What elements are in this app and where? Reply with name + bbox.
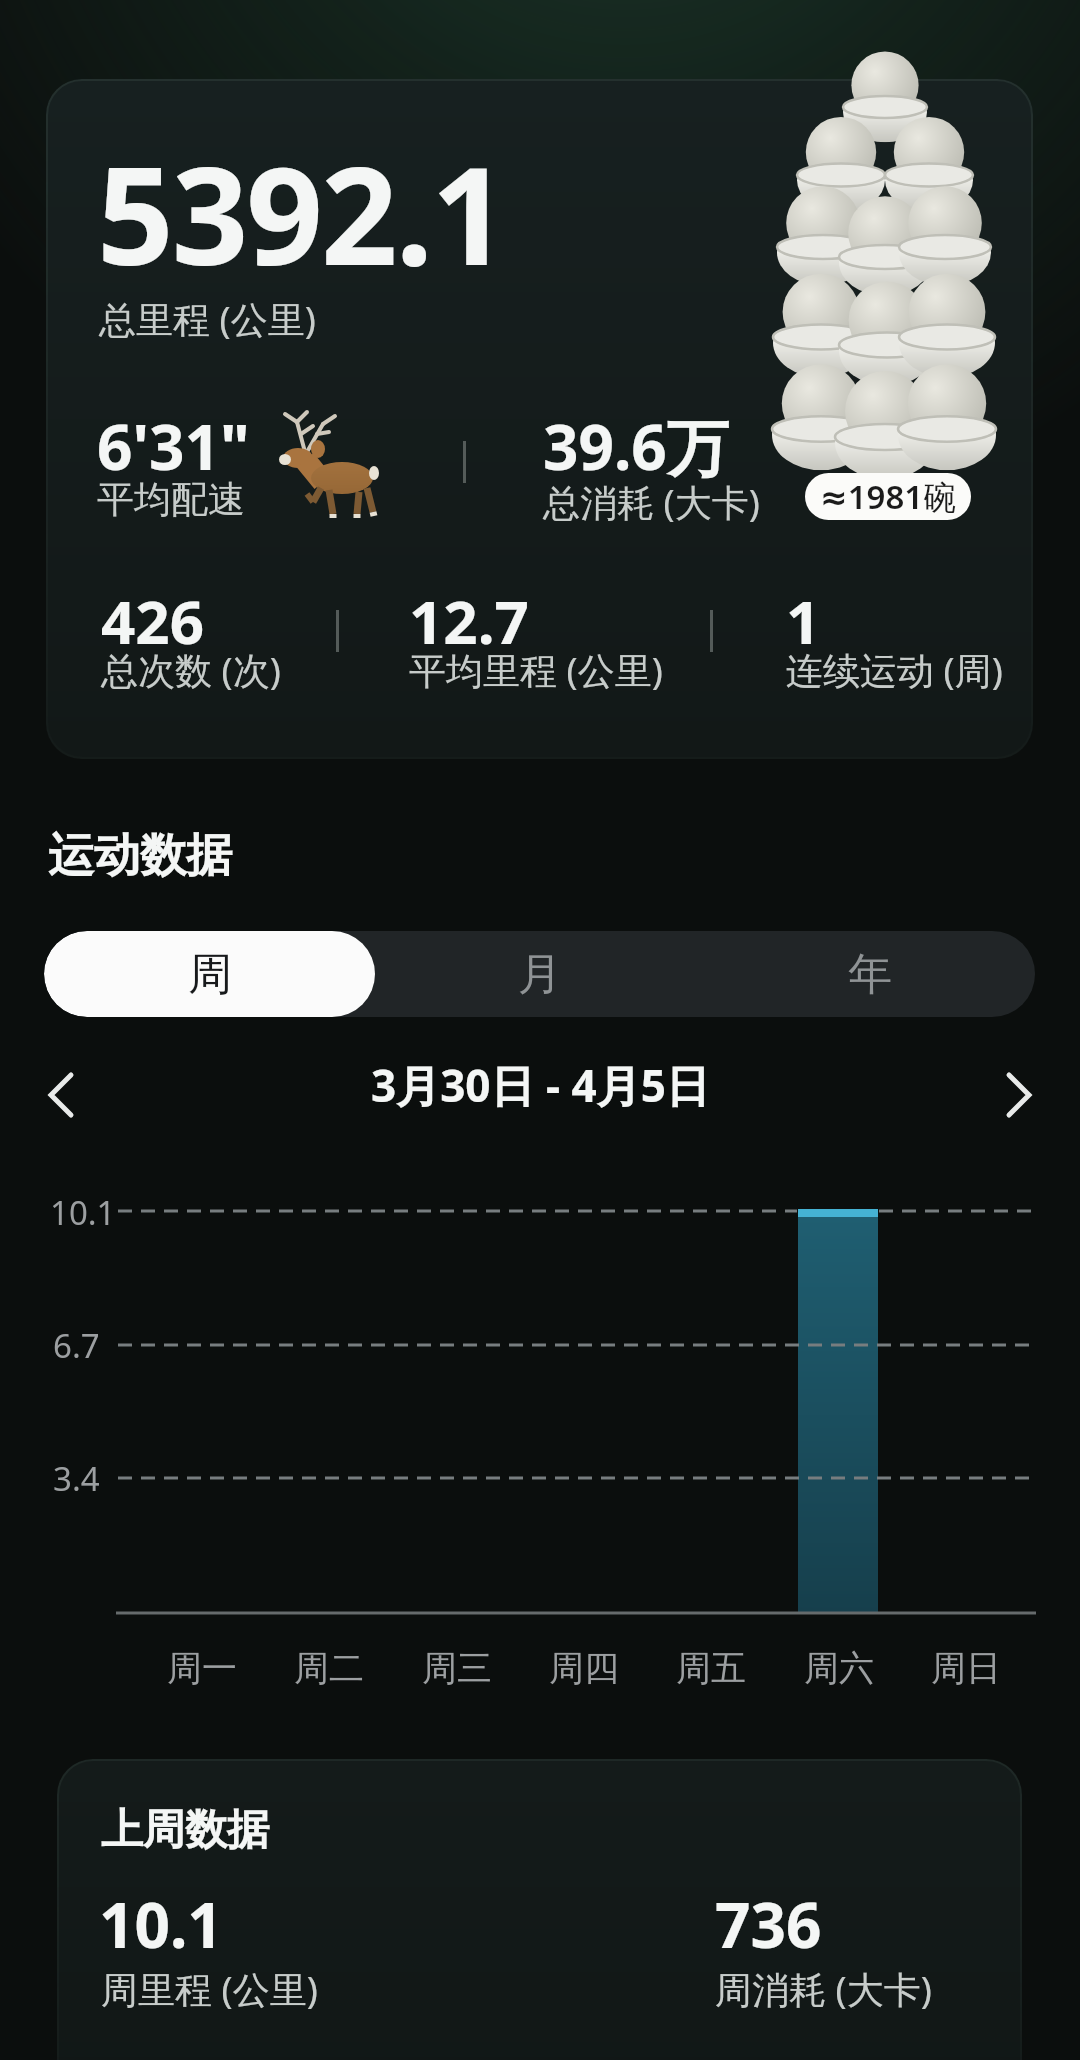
staticText: 736 <box>715 1882 822 1966</box>
button[interactable] <box>46 79 1033 759</box>
staticText: 平均里程 (公里) <box>409 644 663 695</box>
button[interactable] <box>990 1062 1050 1128</box>
staticText: 平均配速 <box>97 476 245 523</box>
staticText: 12.7 <box>409 580 529 662</box>
staticText: 39.6万 <box>543 404 729 489</box>
staticText: ≈1981碗 <box>820 474 957 519</box>
button[interactable] <box>30 1062 90 1128</box>
staticText: 6'31" <box>97 404 250 488</box>
staticText: 周一 <box>167 1646 237 1690</box>
staticText: 周三 <box>422 1646 492 1690</box>
button[interactable]: 周 <box>44 931 375 1017</box>
staticText: 年 <box>848 947 892 1002</box>
staticText: 月 <box>518 947 562 1002</box>
staticText: 周 <box>188 947 232 1002</box>
staticText: 3.4 <box>53 1456 100 1501</box>
staticText: 周四 <box>549 1646 619 1690</box>
staticText: 周二 <box>294 1646 364 1690</box>
staticText: 10.1 <box>50 1190 116 1235</box>
staticText: 总消耗 (大卡) <box>543 476 760 527</box>
staticText: 6.7 <box>53 1323 100 1368</box>
staticText: 连续运动 (周) <box>786 644 1003 695</box>
staticText: 3月30日 - 4月5日 <box>371 1055 710 1115</box>
button[interactable]: 月 <box>375 931 705 1017</box>
staticText: 总里程 (公里) <box>99 293 316 344</box>
staticText: 上周数据 <box>101 1804 269 1857</box>
staticText: 5392.1 <box>97 122 506 305</box>
staticText: 426 <box>101 580 204 662</box>
button[interactable] <box>57 1759 1022 2060</box>
staticText: 周日 <box>931 1646 1001 1690</box>
staticText: 周里程 (公里) <box>101 1963 318 2014</box>
staticText: 周六 <box>804 1646 874 1690</box>
staticText: 运动数据 <box>48 827 232 885</box>
staticText: 周五 <box>676 1646 746 1690</box>
button[interactable]: 年 <box>705 931 1035 1017</box>
staticText: 总次数 (次) <box>101 644 281 695</box>
staticText: 10.1 <box>99 1882 223 1966</box>
staticText: 周消耗 (大卡) <box>715 1963 932 2014</box>
staticText: 1 <box>786 580 821 662</box>
